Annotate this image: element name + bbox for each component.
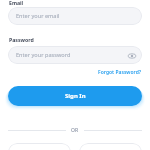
button[interactable]: Show password [127,51,136,60]
staticText: Email [9,0,24,6]
button[interactable]: Sign in with Google [8,143,71,150]
staticText: OR [71,127,79,134]
button[interactable]: Sign In [8,86,142,106]
button[interactable]: Email input [8,7,142,25]
staticText: Sign In [65,92,86,100]
staticText: Enter your email [16,12,60,20]
button[interactable]: Sign in with Facebook [79,143,142,150]
staticText: Forgot Password? [98,69,142,76]
staticText: Password [9,36,34,43]
button[interactable]: Forgot Password? [96,68,142,77]
staticText: Enter your password [16,51,71,59]
button[interactable]: Password input [8,46,142,64]
